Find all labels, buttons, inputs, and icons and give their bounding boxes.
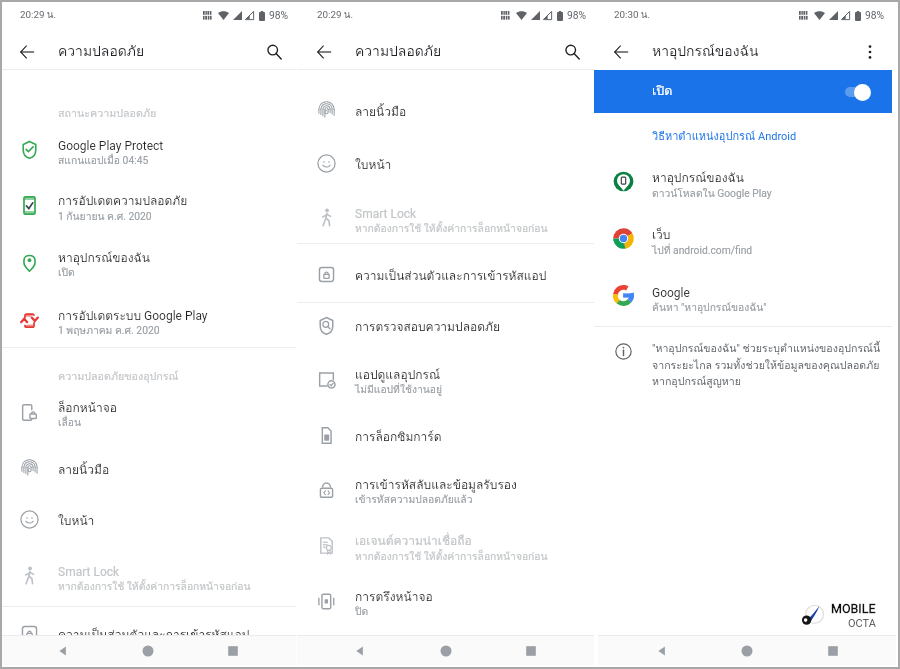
button[interactable]: การอัปเดตระบบ Google Play — [0, 296, 296, 341]
staticText: 98% — [865, 9, 885, 22]
staticText: 1 พฤษภาคม ค.ศ. 2020 — [58, 324, 160, 337]
staticText: ปิด — [355, 606, 369, 619]
button[interactable]: ใบหน้า — [297, 146, 594, 179]
button[interactable]: Navigate up — [3, 31, 51, 73]
staticText: สถานะความปลอดภัย — [58, 108, 157, 121]
button[interactable]: Google Play Protect — [0, 126, 296, 171]
button[interactable]: เอเจนต์ความน่าเชื่อถือ — [297, 522, 594, 567]
button[interactable]: Smart Lock — [297, 194, 594, 239]
staticText: หาอุปกรณ์ของฉัน — [58, 251, 150, 266]
button[interactable]: Home — [424, 636, 468, 665]
button[interactable]: ลายนิ้วมือ — [297, 93, 594, 126]
button[interactable]: Recent apps — [211, 636, 255, 665]
staticText: ความปลอดภัย — [58, 44, 145, 61]
staticText: หาอุปกรณ์ของฉัน — [652, 171, 744, 186]
button[interactable]: Smart Lock — [0, 552, 296, 597]
staticText: หากต้องการใช้ ให้ตั้งค่าการล็อกหน้าจอก่อ… — [58, 580, 251, 593]
staticText: การตรวจสอบความปลอดภัย — [355, 320, 500, 335]
button[interactable]: ล็อกหน้าจอ — [0, 389, 296, 434]
staticText: OCTA — [848, 616, 876, 629]
button[interactable]: เปิด — [594, 70, 892, 113]
staticText: การอัปเดตระบบ Google Play — [58, 308, 208, 324]
staticText: จากระยะไกล รวมทั้งช่วยให้ข้อมูลของคุณปลอ… — [652, 356, 880, 373]
button[interactable]: การตรวจสอบความปลอดภัย — [297, 308, 594, 341]
button[interactable]: วิธีหาตำแหน่งอุปกรณ์ Android — [652, 129, 797, 143]
button[interactable]: Google — [594, 273, 892, 318]
staticText: หากอุปกรณ์สูญหาย — [652, 373, 741, 389]
button[interactable]: ลายนิ้วมือ — [0, 451, 296, 484]
button[interactable]: Recent apps — [509, 636, 553, 665]
button[interactable]: ความเป็นส่วนตัวและการเข้ารหัสแอป — [0, 616, 296, 649]
staticText: ใบหน้า — [58, 514, 95, 529]
staticText: Smart Lock — [355, 206, 417, 221]
staticText: Google Play Protect — [58, 138, 164, 153]
staticText: "หาอุปกรณ์ของฉัน" ช่วยระบุตำแหน่งของอุปก… — [652, 339, 881, 356]
button[interactable]: การตรึงหน้าจอ — [297, 578, 594, 623]
button[interactable]: การล็อกซิมการ์ด — [297, 418, 594, 451]
button[interactable]: การอัปเดตความปลอดภัย — [0, 182, 296, 227]
button[interactable]: Home — [725, 636, 769, 665]
button[interactable]: การเข้ารหัสลับและข้อมูลรับรอง — [297, 466, 594, 511]
staticText: ลายนิ้วมือ — [58, 463, 110, 478]
staticText: ดาวน์โหลดใน Google Play — [652, 187, 772, 200]
staticText: MOBILE — [831, 601, 876, 616]
staticText: เปิด — [58, 267, 75, 280]
button[interactable]: Search — [252, 31, 296, 73]
staticText: 1 กันยายน ค.ศ. 2020 — [58, 210, 152, 223]
staticText: เปิด — [652, 84, 673, 99]
staticText: ล็อกหน้าจอ — [58, 401, 117, 416]
staticText: 20:30 น. — [614, 9, 651, 22]
staticText: การเข้ารหัสลับและข้อมูลรับรอง — [355, 478, 517, 493]
staticText: วิธีหาตำแหน่งอุปกรณ์ Android — [652, 129, 797, 143]
staticText: แอปดูแลอุปกรณ์ — [355, 368, 441, 383]
button[interactable]: Navigate up — [597, 31, 645, 73]
button[interactable]: ใบหน้า — [0, 502, 296, 535]
button[interactable]: แอปดูแลอุปกรณ์ — [297, 356, 594, 401]
button[interactable]: More options — [848, 31, 892, 73]
staticText: ค้นหา "หาอุปกรณ์ของฉัน" — [652, 301, 767, 314]
button[interactable]: หาอุปกรณ์ของฉัน — [594, 159, 892, 204]
staticText: การล็อกซิมการ์ด — [355, 430, 442, 445]
staticText: หากต้องการใช้ ให้ตั้งค่าการล็อกหน้าจอก่อ… — [355, 550, 548, 563]
staticText: 98% — [269, 9, 289, 22]
staticText: เข้ารหัสความปลอดภัยแล้ว — [355, 494, 473, 507]
staticText: 98% — [567, 9, 587, 22]
staticText: ลายนิ้วมือ — [355, 105, 407, 120]
staticText: ความเป็นส่วนตัวและการเข้ารหัสแอป — [58, 628, 250, 643]
staticText: สแกนแอปเมื่อ 04:45 — [58, 154, 149, 167]
staticText: 20:29 น. — [317, 9, 354, 22]
button[interactable]: Navigate up — [300, 31, 348, 73]
staticText: ความปลอดภัย — [355, 44, 442, 61]
staticText: ใบหน้า — [355, 158, 392, 173]
staticText: เลื่อน — [58, 417, 82, 430]
staticText: หาอุปกรณ์ของฉัน — [652, 44, 759, 61]
staticText: ความปลอดภัยของอุปกรณ์ — [58, 371, 179, 384]
button[interactable]: ความเป็นส่วนตัวและการเข้ารหัสแอป — [297, 257, 594, 290]
staticText: ไม่มีแอปที่ใช้งานอยู่ — [355, 384, 442, 397]
button[interactable]: เว็บ — [594, 216, 892, 261]
staticText: หากต้องการใช้ ให้ตั้งค่าการล็อกหน้าจอก่อ… — [355, 222, 548, 235]
staticText: การตรึงหน้าจอ — [355, 590, 433, 605]
staticText: 20:29 น. — [20, 9, 57, 22]
staticText: Google — [652, 285, 690, 300]
button[interactable]: Search — [550, 31, 594, 73]
button[interactable]: Recent apps — [811, 636, 855, 665]
staticText: การอัปเดตความปลอดภัย — [58, 194, 188, 209]
button[interactable]: Home — [126, 636, 170, 665]
staticText: ความเป็นส่วนตัวและการเข้ารหัสแอป — [355, 269, 547, 284]
button[interactable]: หาอุปกรณ์ของฉัน — [0, 239, 296, 284]
staticText: เอเจนต์ความน่าเชื่อถือ — [355, 534, 472, 549]
button[interactable]: Back — [640, 636, 684, 665]
staticText: เว็บ — [652, 228, 671, 243]
staticText: ไปที่ android.com/find — [652, 244, 753, 257]
button[interactable]: Back — [41, 636, 85, 665]
button[interactable]: Back — [338, 636, 382, 665]
staticText: Smart Lock — [58, 564, 120, 579]
